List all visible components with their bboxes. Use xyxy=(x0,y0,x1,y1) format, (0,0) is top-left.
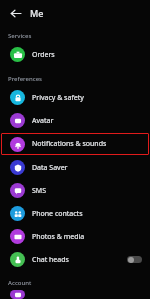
button[interactable] xyxy=(0,290,150,299)
staticText: Me xyxy=(30,7,44,19)
button[interactable]: Photos & media xyxy=(0,225,150,248)
staticText: Photos & media xyxy=(32,232,142,242)
button[interactable]: Chat heads toggle xyxy=(127,256,142,263)
staticText: Orders xyxy=(32,50,142,60)
button[interactable]: Avatar xyxy=(0,109,150,132)
staticText: Services xyxy=(8,32,32,40)
button[interactable]: SMS xyxy=(0,179,150,202)
staticText: SMS xyxy=(32,186,142,196)
button[interactable]: Data Saver xyxy=(0,156,150,179)
button[interactable]: Privacy & safety xyxy=(0,86,150,109)
staticText: Account xyxy=(8,279,32,287)
button[interactable]: Notifications & sounds xyxy=(1,133,149,155)
staticText: Preferences xyxy=(8,75,43,83)
button[interactable]: Back xyxy=(7,5,23,21)
button[interactable]: Phone contacts xyxy=(0,202,150,225)
staticText: Chat heads xyxy=(32,255,127,265)
staticText: Avatar xyxy=(32,116,142,126)
staticText: Privacy & safety xyxy=(32,93,142,103)
staticText: Data Saver xyxy=(32,163,142,173)
button[interactable]: Orders xyxy=(0,43,150,66)
staticText: Notifications & sounds xyxy=(32,139,141,149)
button[interactable]: Chat heads xyxy=(0,248,150,271)
staticText: Phone contacts xyxy=(32,209,142,219)
